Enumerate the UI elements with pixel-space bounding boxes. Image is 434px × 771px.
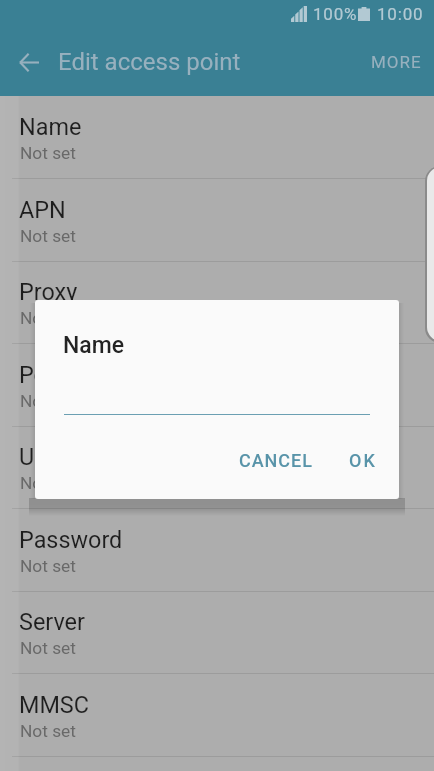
button[interactable]: OK — [339, 441, 388, 480]
staticText: Edit access point — [58, 48, 241, 76]
button[interactable]: Navigate up — [8, 41, 50, 83]
button[interactable]: Name — [0, 96, 434, 179]
button[interactable]: CANCEL — [229, 441, 323, 480]
staticText: Not set — [20, 638, 76, 658]
staticText: MORE — [371, 52, 422, 72]
button[interactable]: Server — [0, 591, 434, 674]
staticText: Not set — [20, 721, 76, 741]
button[interactable]: MMSC — [0, 674, 434, 757]
staticText: Name — [63, 332, 125, 359]
button[interactable]: Port — [0, 344, 434, 427]
button[interactable]: Proxy — [0, 261, 434, 344]
staticText: Not set — [20, 556, 76, 576]
staticText: Port — [19, 361, 64, 388]
staticText: MMSC — [19, 691, 89, 718]
button[interactable]: MMS proxy — [0, 756, 434, 771]
staticText: 10:00 — [377, 4, 424, 24]
staticText: Name — [19, 113, 82, 140]
staticText: Not set — [20, 226, 76, 246]
staticText: Not set — [20, 473, 76, 493]
staticText: Proxy — [19, 278, 78, 305]
staticText: Not set — [20, 308, 76, 328]
staticText: Not set — [20, 143, 76, 163]
button[interactable]: MORE — [360, 41, 434, 83]
button[interactable]: APN — [0, 179, 434, 262]
staticText: Password — [19, 526, 123, 553]
button[interactable]: Password — [0, 509, 434, 592]
staticText: 100% — [313, 4, 358, 24]
button[interactable]: Username — [0, 426, 434, 509]
staticText: APN — [19, 196, 66, 223]
staticText: CANCEL — [239, 450, 313, 471]
staticText: OK — [349, 450, 378, 471]
staticText: Username — [19, 443, 126, 470]
staticText: Not set — [20, 391, 76, 411]
staticText: Server — [19, 608, 85, 635]
